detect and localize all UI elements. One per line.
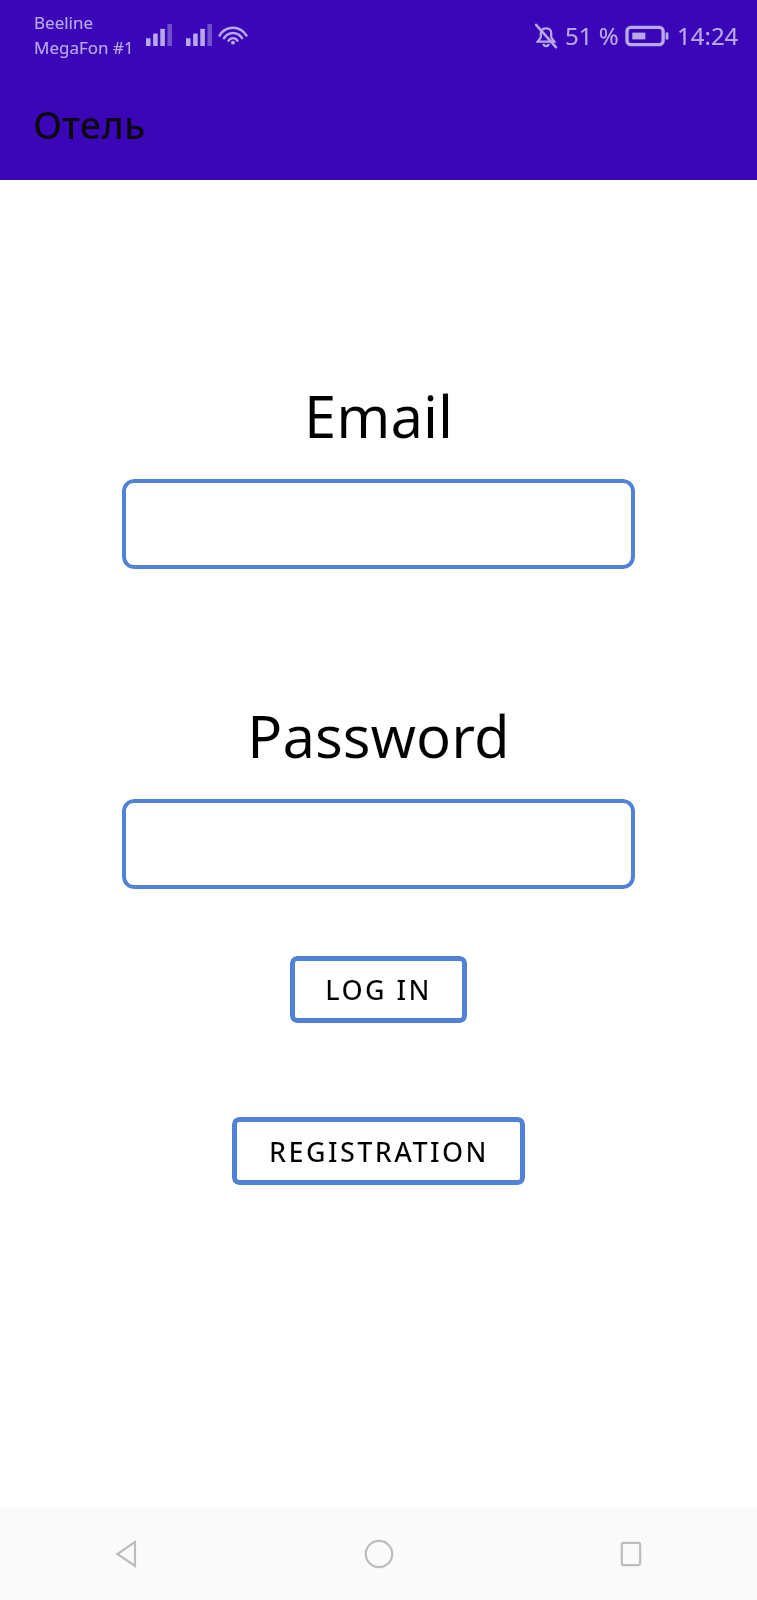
button[interactable] bbox=[122, 479, 635, 569]
staticText: Отель bbox=[33, 98, 146, 150]
button[interactable]: Recent apps bbox=[505, 1508, 757, 1600]
button[interactable]: Back bbox=[0, 1508, 253, 1600]
staticText: MegaFon #1 bbox=[34, 36, 134, 59]
staticText: Beeline bbox=[34, 11, 94, 34]
staticText: 51 % bbox=[565, 19, 619, 52]
staticText: LOG IN bbox=[325, 971, 432, 1008]
staticText: Email bbox=[304, 376, 453, 455]
staticText: Password bbox=[247, 696, 510, 775]
button[interactable]: REGISTRATION bbox=[232, 1117, 525, 1185]
button[interactable] bbox=[122, 799, 635, 889]
staticText: 14:24 bbox=[677, 19, 739, 52]
staticText: REGISTRATION bbox=[269, 1133, 489, 1170]
button[interactable]: Home bbox=[253, 1508, 505, 1600]
button[interactable]: LOG IN bbox=[290, 956, 467, 1023]
